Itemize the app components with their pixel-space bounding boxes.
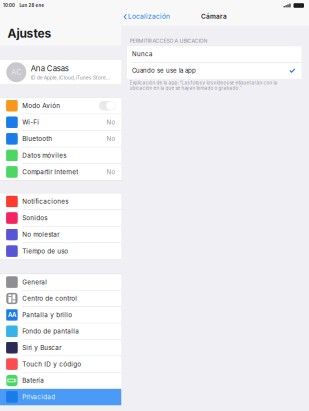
staticText: No molestar [22, 231, 59, 238]
staticText: Explicación de la app: “Las fotos y los … [129, 80, 277, 91]
button[interactable]: ‹ [121, 11, 174, 21]
button[interactable] [0, 340, 121, 356]
staticText: Notificaciones [22, 198, 68, 205]
button[interactable] [0, 243, 121, 260]
staticText: ‹ [123, 10, 127, 23]
staticText: PERMITIR ACCESO A UBICACIÓN [129, 38, 207, 44]
staticText: Bluetooth [22, 135, 52, 143]
staticText: Sonidos [22, 214, 47, 222]
staticText: No [106, 168, 115, 176]
button[interactable]: AA [0, 307, 121, 323]
staticText: ID de Apple, iCloud, iTunes Store… [31, 75, 110, 81]
button[interactable]: AC [0, 60, 121, 85]
button[interactable] [0, 372, 121, 389]
button[interactable] [0, 193, 121, 210]
button[interactable] [0, 164, 121, 180]
button[interactable]: Nunca [127, 46, 301, 62]
staticText: Compartir Internet [22, 168, 78, 176]
staticText: AC [11, 68, 21, 76]
staticText: Datos móviles [22, 152, 66, 159]
staticText: 10:00 [3, 3, 15, 8]
button[interactable] [0, 274, 121, 290]
staticText: AA [8, 311, 16, 318]
button[interactable] [0, 210, 121, 227]
staticText: Ajustes [7, 26, 51, 40]
staticText: ✓ [288, 66, 295, 75]
button[interactable] [0, 131, 121, 147]
staticText: Centro de control [22, 295, 77, 302]
staticText: Nunca [132, 50, 152, 58]
button[interactable] [0, 226, 121, 243]
staticText: Batería [22, 377, 44, 384]
staticText: Lun 28 ene [19, 3, 44, 8]
button[interactable]: Cuando se use la app [127, 62, 301, 79]
staticText: Privacidad [22, 393, 55, 401]
staticText: Pantalla y brillo [22, 311, 72, 319]
staticText: Ana Casas [31, 64, 69, 73]
staticText: Fondo de pantalla [22, 327, 79, 335]
button[interactable] [0, 290, 121, 307]
staticText: No [106, 135, 115, 142]
staticText: General [22, 278, 47, 286]
staticText: Wi-Fi [22, 118, 39, 126]
staticText: Touch ID y código [22, 360, 81, 368]
staticText: Siri y Buscar [22, 344, 61, 351]
button[interactable] [0, 147, 121, 164]
button[interactable] [0, 356, 121, 372]
staticText: Localización [128, 12, 170, 20]
button[interactable] [0, 323, 121, 340]
staticText: Cámara [201, 12, 227, 20]
button[interactable] [0, 114, 121, 131]
staticText: No [106, 119, 115, 126]
button[interactable] [0, 98, 121, 114]
staticText: Cuando se use la app [132, 67, 196, 74]
button[interactable] [0, 389, 121, 405]
staticText: Modo Avión [22, 102, 60, 109]
staticText: Tiempo de uso [22, 247, 68, 255]
